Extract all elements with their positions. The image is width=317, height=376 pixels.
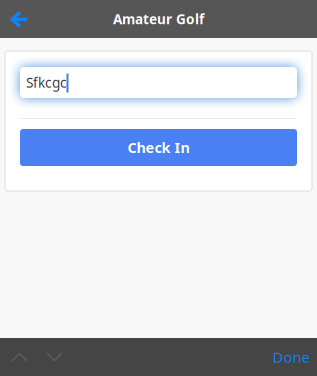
button[interactable]: Done bbox=[265, 338, 317, 376]
button[interactable]: Previous field bbox=[2, 338, 37, 376]
staticText: Done bbox=[272, 347, 309, 367]
staticText: Amateur Golf bbox=[113, 10, 204, 28]
button[interactable]: Sfkcgc bbox=[20, 67, 297, 98]
staticText: Sfkcgc bbox=[26, 73, 67, 92]
button[interactable]: Check In bbox=[20, 129, 297, 166]
button[interactable]: Back bbox=[0, 0, 37, 38]
button[interactable]: Next field bbox=[37, 338, 72, 376]
staticText: Check In bbox=[127, 138, 189, 157]
